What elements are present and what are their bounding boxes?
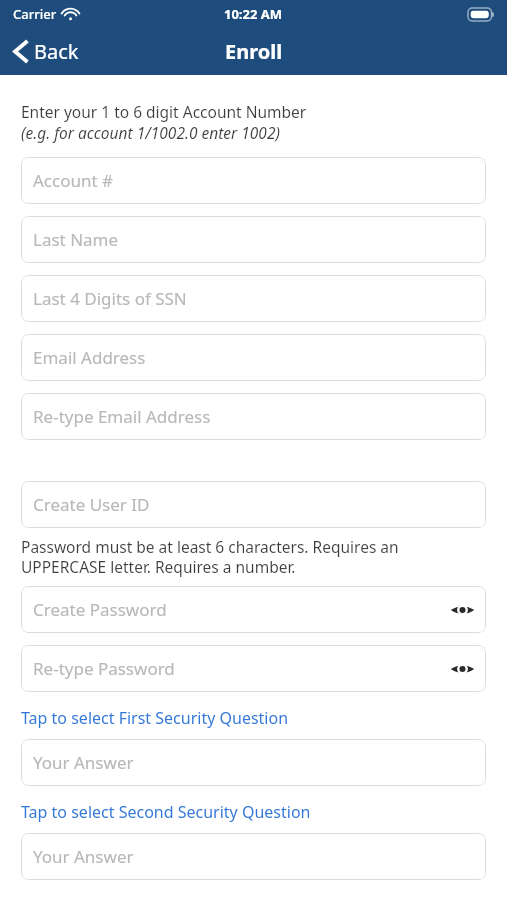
staticText: Last 4 Digits of SSN xyxy=(33,287,187,310)
button[interactable]: Last Name xyxy=(21,216,486,263)
button[interactable]: Create Password xyxy=(21,586,486,633)
staticText: Re-type Email Address xyxy=(33,405,211,428)
button[interactable]: Your Answer xyxy=(21,833,486,880)
button[interactable]: Last 4 Digits of SSN xyxy=(21,275,486,322)
button[interactable]: Your Answer xyxy=(21,739,486,786)
staticText: Last Name xyxy=(33,228,119,251)
staticText: Email Address xyxy=(33,346,146,369)
staticText: Carrier xyxy=(13,5,57,23)
staticText: Back xyxy=(34,38,79,65)
staticText: Create User ID xyxy=(33,493,150,516)
staticText: (e.g. for account 1/1002.0 enter 1002) xyxy=(21,122,280,143)
button[interactable]: Re-type Email Address xyxy=(21,393,486,440)
staticText: Enroll xyxy=(225,38,283,65)
staticText: Your Answer xyxy=(33,845,134,868)
staticText: 10:22 AM xyxy=(224,5,283,23)
button[interactable]: Tap to select First Security Question xyxy=(21,707,486,729)
button[interactable]: Re-type Password xyxy=(21,645,486,692)
button[interactable]: Back xyxy=(0,28,91,75)
button[interactable]: Create User ID xyxy=(21,481,486,528)
staticText: Account # xyxy=(33,169,114,192)
button[interactable]: Tap to select Second Security Question xyxy=(21,801,486,823)
staticText: Re-type Password xyxy=(33,657,175,680)
staticText: Create Password xyxy=(33,598,167,621)
staticText: Your Answer xyxy=(33,751,134,774)
button[interactable]: Email Address xyxy=(21,334,486,381)
button[interactable]: Show password xyxy=(438,586,486,633)
staticText: Password must be at least 6 characters. … xyxy=(21,536,486,577)
staticText: Tap to select First Security Question xyxy=(21,707,289,729)
button[interactable]: Show re-typed password xyxy=(438,645,486,692)
staticText: Tap to select Second Security Question xyxy=(21,801,311,823)
button[interactable]: Account # xyxy=(21,157,486,204)
staticText: Enter your 1 to 6 digit Account Number xyxy=(21,101,307,122)
